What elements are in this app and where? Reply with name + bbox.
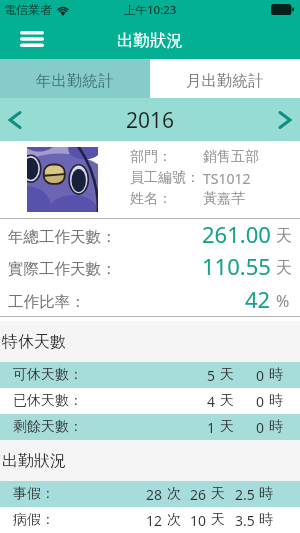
staticText: 0 <box>256 392 265 411</box>
staticText: 銷售五部 <box>203 148 259 166</box>
button[interactable]: 月出勤統計 <box>150 59 300 98</box>
staticText: 0 <box>256 418 265 437</box>
staticText: 天 <box>211 511 225 529</box>
staticText: 110.55 <box>202 251 271 281</box>
staticText: 事假： <box>13 485 55 503</box>
staticText: 天 <box>276 226 292 246</box>
button[interactable]: 實際工作天數： <box>0 251 300 283</box>
staticText: 時 <box>269 366 283 384</box>
staticText: 剩餘天數： <box>13 418 83 436</box>
staticText: 時 <box>269 418 283 436</box>
staticText: 出勤狀況 <box>2 451 66 471</box>
staticText: % <box>276 290 290 312</box>
staticText: 天 <box>211 485 225 503</box>
staticText: 時 <box>259 511 273 529</box>
staticText: 可休天數： <box>13 366 83 384</box>
staticText: 5 <box>207 366 216 385</box>
button[interactable]: 年總工作天數： <box>0 219 300 251</box>
staticText: 4 <box>207 392 216 411</box>
button[interactable]: 事假： <box>0 481 300 507</box>
button[interactable]: 剩餘天數： <box>0 414 300 440</box>
staticText: 42 <box>245 284 271 314</box>
button[interactable]: Next year <box>270 98 300 141</box>
staticText: 時 <box>269 392 283 410</box>
staticText: 上午10:23 <box>124 2 177 18</box>
staticText: 12 <box>146 511 163 530</box>
staticText: 電信業者 <box>4 2 52 17</box>
staticText: 部門： <box>130 148 172 166</box>
staticText: 時 <box>259 485 273 503</box>
staticText: 黃嘉芊 <box>203 190 245 208</box>
staticText: 實際工作天數： <box>8 259 117 279</box>
staticText: 0 <box>256 366 265 385</box>
staticText: TS1012 <box>203 169 251 188</box>
button[interactable]: 可休天數： <box>0 362 300 388</box>
staticText: 次 <box>167 511 181 529</box>
button[interactable]: 年出勤統計 <box>0 59 150 98</box>
staticText: 天 <box>220 392 234 410</box>
button[interactable]: Open navigation menu <box>13 22 51 56</box>
button[interactable]: Previous year <box>0 98 30 141</box>
staticText: 天 <box>220 366 234 384</box>
staticText: 天 <box>276 258 292 278</box>
staticText: 2016 <box>126 106 175 135</box>
staticText: 2.5 <box>235 485 255 504</box>
staticText: 月出勤統計 <box>186 71 264 91</box>
staticText: 28 <box>146 485 163 504</box>
staticText: 26 <box>190 485 207 504</box>
staticText: 3.5 <box>235 511 255 530</box>
staticText: 已休天數： <box>13 392 83 410</box>
staticText: 10 <box>190 511 207 530</box>
button[interactable]: 已休天數： <box>0 388 300 414</box>
button[interactable]: 病假： <box>0 507 300 533</box>
button[interactable]: 工作比率： <box>0 283 300 316</box>
staticText: 員工編號： <box>130 169 200 187</box>
staticText: 工作比率： <box>8 292 86 312</box>
staticText: 261.00 <box>202 219 271 249</box>
staticText: 1 <box>207 418 216 437</box>
staticText: 次 <box>167 485 181 503</box>
staticText: 特休天數 <box>2 332 66 352</box>
staticText: 出勤狀況 <box>117 30 183 51</box>
staticText: 年出勤統計 <box>36 71 114 91</box>
staticText: 姓名： <box>130 190 172 208</box>
staticText: 天 <box>220 418 234 436</box>
staticText: 年總工作天數： <box>8 227 117 247</box>
staticText: 病假： <box>13 511 55 529</box>
